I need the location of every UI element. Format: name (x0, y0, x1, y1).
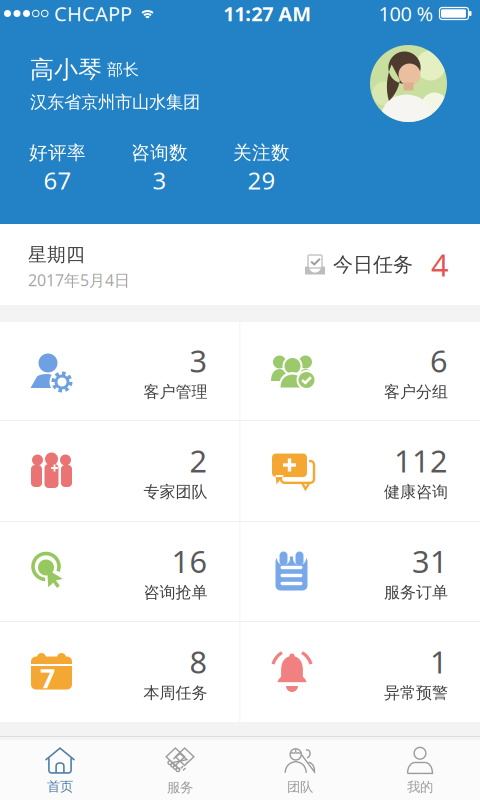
staticText: 客户分组 (384, 382, 448, 402)
staticText: 2 (189, 440, 207, 481)
staticText: 4 (431, 244, 449, 285)
button[interactable]: 首页 (0, 746, 120, 796)
button[interactable]: 2 (0, 421, 239, 521)
staticText: 16 (171, 541, 207, 581)
button[interactable]: 3 (0, 322, 239, 420)
staticText: 100 % (378, 0, 433, 27)
staticText: 异常预警 (384, 683, 448, 703)
staticText: 3 (152, 164, 166, 196)
staticText: 客户管理 (143, 382, 207, 402)
staticText: 星期四 (28, 243, 85, 266)
staticText: 67 (43, 164, 71, 196)
staticText: 高小琴 (30, 55, 102, 84)
staticText: 今日任务 (333, 252, 413, 277)
staticText: 服务订单 (384, 582, 448, 602)
staticText: CHCAPP (54, 0, 132, 27)
staticText: 31 (412, 541, 448, 581)
button[interactable]: 个人资料 (370, 45, 447, 122)
staticText: 咨询数 (131, 141, 188, 164)
staticText: 1 (430, 641, 448, 682)
button[interactable]: 星期四 (0, 224, 480, 305)
staticText: 关注数 (233, 141, 290, 164)
staticText: 8 (189, 641, 207, 682)
staticText: 我的 (407, 779, 433, 795)
button[interactable]: 6 (240, 322, 480, 420)
staticText: 好评率 (29, 141, 86, 164)
staticText: 112 (394, 440, 448, 481)
staticText: 汉东省京州市山水集团 (30, 91, 200, 113)
staticText: 健康咨询 (384, 482, 448, 502)
staticText: 团队 (287, 779, 313, 795)
button[interactable]: 16 (0, 522, 239, 621)
staticText: 首页 (47, 778, 73, 795)
button[interactable]: 7 (0, 622, 239, 722)
button[interactable]: 112 (240, 421, 480, 521)
staticText: 11:27 AM (223, 0, 311, 27)
staticText: 咨询抢单 (143, 582, 207, 602)
staticText: 专家团队 (143, 482, 207, 502)
staticText: 本周任务 (143, 683, 207, 703)
staticText: 29 (247, 164, 275, 196)
staticText: 服务 (167, 779, 193, 796)
button[interactable]: 我的 (360, 746, 480, 796)
staticText: 6 (430, 340, 448, 381)
staticText: 2017年5月4日 (28, 269, 130, 290)
staticText: 3 (189, 340, 207, 381)
staticText: 7 (40, 660, 55, 696)
button[interactable]: 服务 (120, 746, 240, 796)
button[interactable]: 团队 (240, 746, 360, 796)
button[interactable]: 31 (240, 522, 480, 621)
staticText: 部长 (107, 60, 139, 80)
button[interactable]: 1 (240, 622, 480, 722)
